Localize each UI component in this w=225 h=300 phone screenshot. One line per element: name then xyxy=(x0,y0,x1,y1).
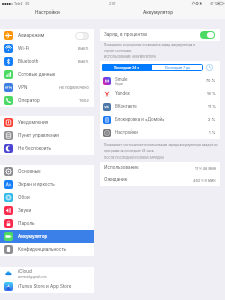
staticText: ПОСЛЕ ПОСЛЕДНЕЙ ПОЛНОЙ ЗАРЯДКИ xyxy=(104,156,164,160)
button[interactable]: Конфиденциальность xyxy=(0,243,94,256)
staticText: Сотовые данные xyxy=(18,72,56,78)
button[interactable]: Show battery usage time xyxy=(205,64,214,71)
staticText: Tele2 xyxy=(79,98,89,103)
staticText: 41 % xyxy=(210,2,218,6)
button[interactable]: Обои xyxy=(0,191,94,204)
staticText: ИСПОЛЬЗОВАНИЕ АККУМУЛЯТОРА xyxy=(104,55,157,59)
staticText: Yandex xyxy=(115,91,130,96)
staticText: 70 % xyxy=(206,78,216,83)
staticText: Последние 24 ч xyxy=(114,66,140,70)
staticText: Аккумулятор xyxy=(143,10,174,16)
button[interactable]: Авиарежим xyxy=(0,29,94,42)
staticText: 2 % xyxy=(208,117,216,122)
staticText: Оператор xyxy=(18,98,40,104)
button[interactable]: Настройки xyxy=(100,126,220,139)
staticText: Не беспокоить xyxy=(18,146,52,152)
button[interactable]: Ожидание xyxy=(100,174,220,186)
staticText: Пункт управления xyxy=(18,133,59,139)
button[interactable]: Оператор xyxy=(0,94,94,107)
button[interactable]: Последние 24 ч xyxy=(102,64,152,71)
staticText: 1 % xyxy=(209,130,216,135)
staticText: 3G xyxy=(25,2,30,6)
button[interactable]: Пароль xyxy=(0,217,94,230)
staticText: anrexxxd@gmail.com xyxy=(18,275,47,278)
staticText: Настройки xyxy=(115,130,138,135)
staticText: Обои xyxy=(18,195,30,201)
staticText: Пароль xyxy=(18,221,35,227)
staticText: Показывать в процентах оставшийся заряд … xyxy=(104,43,201,52)
button[interactable]: Сотовые данные xyxy=(0,68,94,81)
button[interactable]: Заряд, в процентах xyxy=(100,29,220,41)
button[interactable]: Уведомления xyxy=(0,116,94,129)
staticText: 11 ч 46 мин xyxy=(195,166,216,171)
button[interactable]: Аккумулятор xyxy=(0,230,94,243)
button[interactable]: ВКонтакте xyxy=(100,100,220,113)
staticText: Звуки xyxy=(18,208,32,214)
button[interactable]: iCloud xyxy=(0,267,94,280)
staticText: Заряд, в процентах xyxy=(104,32,200,38)
button[interactable]: Smule xyxy=(100,74,220,87)
staticText: VPN xyxy=(18,85,28,91)
staticText: Последние 7 дн xyxy=(165,66,190,70)
staticText: Bluetooth xyxy=(18,59,39,65)
staticText: Основные xyxy=(18,169,41,175)
button[interactable]: Пункт управления xyxy=(0,129,94,142)
button[interactable]: Yandex xyxy=(100,87,220,100)
staticText: Аккумулятор xyxy=(18,234,48,240)
staticText: 16 % xyxy=(207,91,216,96)
staticText: 2:51 xyxy=(109,2,116,6)
staticText: Wi-Fi xyxy=(18,46,30,52)
staticText: iCloud xyxy=(18,269,32,275)
button[interactable]: iTunes Store и App Store xyxy=(0,280,94,293)
staticText: Экран и яркость xyxy=(18,182,55,188)
staticText: 11 % xyxy=(208,104,216,109)
button[interactable]: Использование xyxy=(100,162,220,174)
staticText: Использование xyxy=(104,165,195,171)
staticText: Аудио xyxy=(115,82,124,85)
button[interactable]: Звуки xyxy=(0,204,94,217)
button[interactable]: VPN xyxy=(0,81,94,94)
staticText: iTunes Store и App Store xyxy=(18,284,72,290)
staticText: Выкл. xyxy=(78,46,89,51)
staticText: Smule xyxy=(115,77,128,82)
button[interactable]: Не беспокоить xyxy=(0,142,94,155)
staticText: Настройки xyxy=(35,10,60,16)
button[interactable]: Блокировка и «Домой» xyxy=(100,113,220,126)
staticText: Уведомления xyxy=(18,120,49,126)
staticText: Tele2 xyxy=(14,2,23,6)
staticText: ВКонтакте xyxy=(115,104,137,109)
staticText: Блокировка и «Домой» xyxy=(115,117,165,122)
button[interactable]: Bluetooth xyxy=(0,55,94,68)
staticText: Не подключено xyxy=(59,85,89,90)
button[interactable]: Экран и яркость xyxy=(0,178,94,191)
staticText: Ожидание xyxy=(104,177,193,183)
button[interactable]: Последние 7 дн xyxy=(152,64,203,71)
staticText: Авиарежим xyxy=(18,33,45,39)
staticText: Конфиденциальность xyxy=(18,247,67,253)
button[interactable]: Wi-Fi xyxy=(0,42,94,55)
staticText: Выкл. xyxy=(78,59,89,64)
staticText: 483 ч 9 мин xyxy=(193,178,216,183)
staticText: Показывает соотношение использования зар… xyxy=(104,143,219,152)
button[interactable]: Основные xyxy=(0,165,94,178)
